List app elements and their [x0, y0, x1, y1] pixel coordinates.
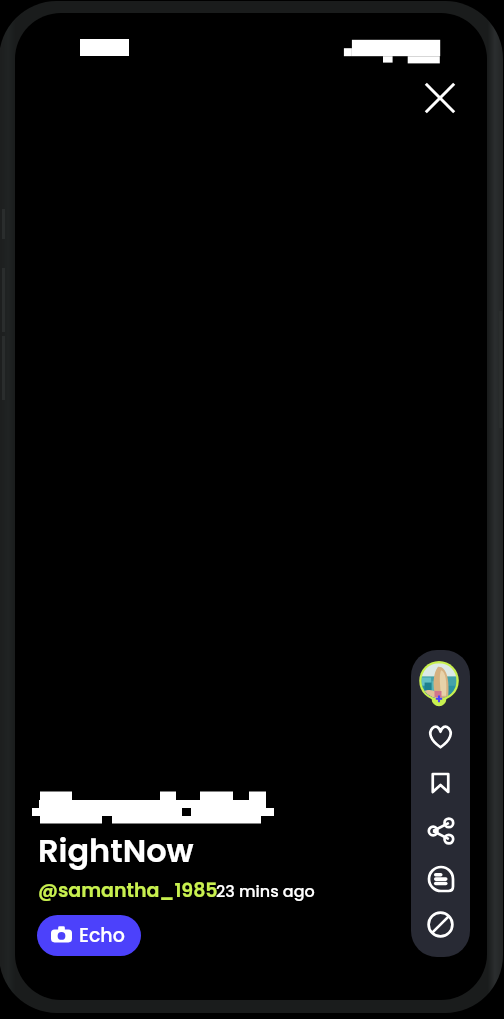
button[interactable]: Profile — [411, 650, 468, 713]
staticText: 23 mins ago — [216, 880, 315, 902]
staticText: @samantha_1985 — [38, 877, 218, 904]
button[interactable]: Block — [411, 903, 470, 945]
button[interactable]: Like — [411, 715, 470, 757]
button[interactable]: Close — [416, 74, 464, 122]
button[interactable]: Share — [411, 810, 470, 852]
button[interactable]: Comment — [411, 858, 470, 900]
button[interactable]: Echo — [37, 915, 141, 956]
staticText: Echo — [79, 922, 125, 949]
staticText: RightNow — [38, 828, 194, 873]
button[interactable]: Save — [411, 761, 470, 803]
